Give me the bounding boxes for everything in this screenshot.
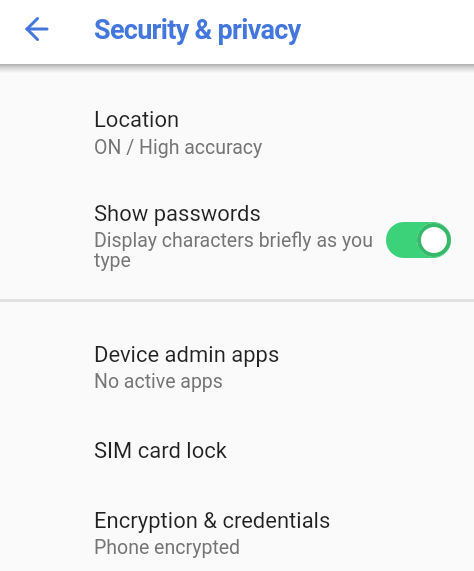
- button[interactable]: [13, 5, 61, 53]
- button[interactable]: Location: [0, 88, 474, 176]
- button[interactable]: Device admin apps: [0, 320, 474, 410]
- staticText: No active apps: [94, 370, 223, 393]
- staticText: SIM card lock: [94, 438, 227, 464]
- staticText: Encryption & credentials: [94, 508, 331, 534]
- button[interactable]: SIM card lock: [0, 420, 474, 488]
- staticText: Location: [94, 107, 180, 133]
- staticText: Phone encrypted: [94, 536, 241, 559]
- staticText: Security & privacy: [94, 14, 301, 46]
- staticText: Device admin apps: [94, 342, 280, 368]
- button[interactable]: [386, 222, 451, 258]
- button[interactable]: Encryption & credentials: [0, 490, 474, 571]
- staticText: ON / High accuracy: [94, 136, 263, 159]
- button[interactable]: Show passwords: [0, 176, 474, 290]
- staticText: Show passwords: [94, 201, 261, 227]
- staticText: Display characters briefly as you type: [94, 229, 384, 272]
